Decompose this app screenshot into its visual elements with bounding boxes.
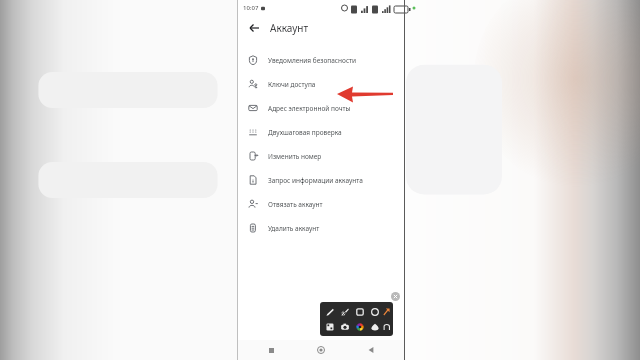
button[interactable]: Круг	[368, 305, 381, 318]
button[interactable]: Ключи доступа	[238, 72, 404, 96]
button[interactable]: Главный экран	[314, 343, 328, 357]
staticText: 10:07	[243, 4, 259, 12]
button[interactable]: Маркер	[338, 305, 351, 318]
staticText: Удалить аккаунт	[268, 224, 320, 233]
button[interactable]: Стрелка	[383, 305, 390, 318]
staticText: Запрос информации аккаунта	[268, 176, 363, 185]
button[interactable]: Назад	[246, 20, 262, 36]
button[interactable]: Назад	[364, 343, 378, 357]
button[interactable]: Изменить номер	[238, 144, 404, 168]
button[interactable]: Адрес электронной почты	[238, 96, 404, 120]
staticText: Уведомления безопасности	[268, 56, 357, 65]
staticText: Двухшаговая проверка	[268, 128, 342, 137]
staticText: Адрес электронной почты	[268, 104, 351, 113]
button[interactable]: Запрос информации аккаунта	[238, 168, 404, 192]
button[interactable]: Двухшаговая проверка	[238, 120, 404, 144]
button[interactable]: Уведомления безопасности	[238, 48, 404, 72]
button[interactable]: Прямоугольник	[353, 305, 366, 318]
button[interactable]: Мозаика	[323, 320, 336, 333]
button[interactable]: Закрыть	[391, 292, 400, 301]
button[interactable]: Карандаш	[323, 305, 336, 318]
staticText: Отвязать аккаунт	[268, 200, 323, 209]
staticText: Аккаунт	[270, 21, 309, 35]
staticText: Ключи доступа	[268, 80, 316, 89]
staticText: Изменить номер	[268, 152, 322, 161]
button[interactable]: Цвет	[353, 320, 366, 333]
button[interactable]: Отвязать аккаунт	[238, 192, 404, 216]
button[interactable]: Последние приложения	[264, 343, 278, 357]
button[interactable]: Отменить	[383, 320, 390, 333]
button[interactable]: Ластик	[368, 320, 381, 333]
button[interactable]: Снимок	[338, 320, 351, 333]
button[interactable]: Удалить аккаунт	[238, 216, 404, 240]
